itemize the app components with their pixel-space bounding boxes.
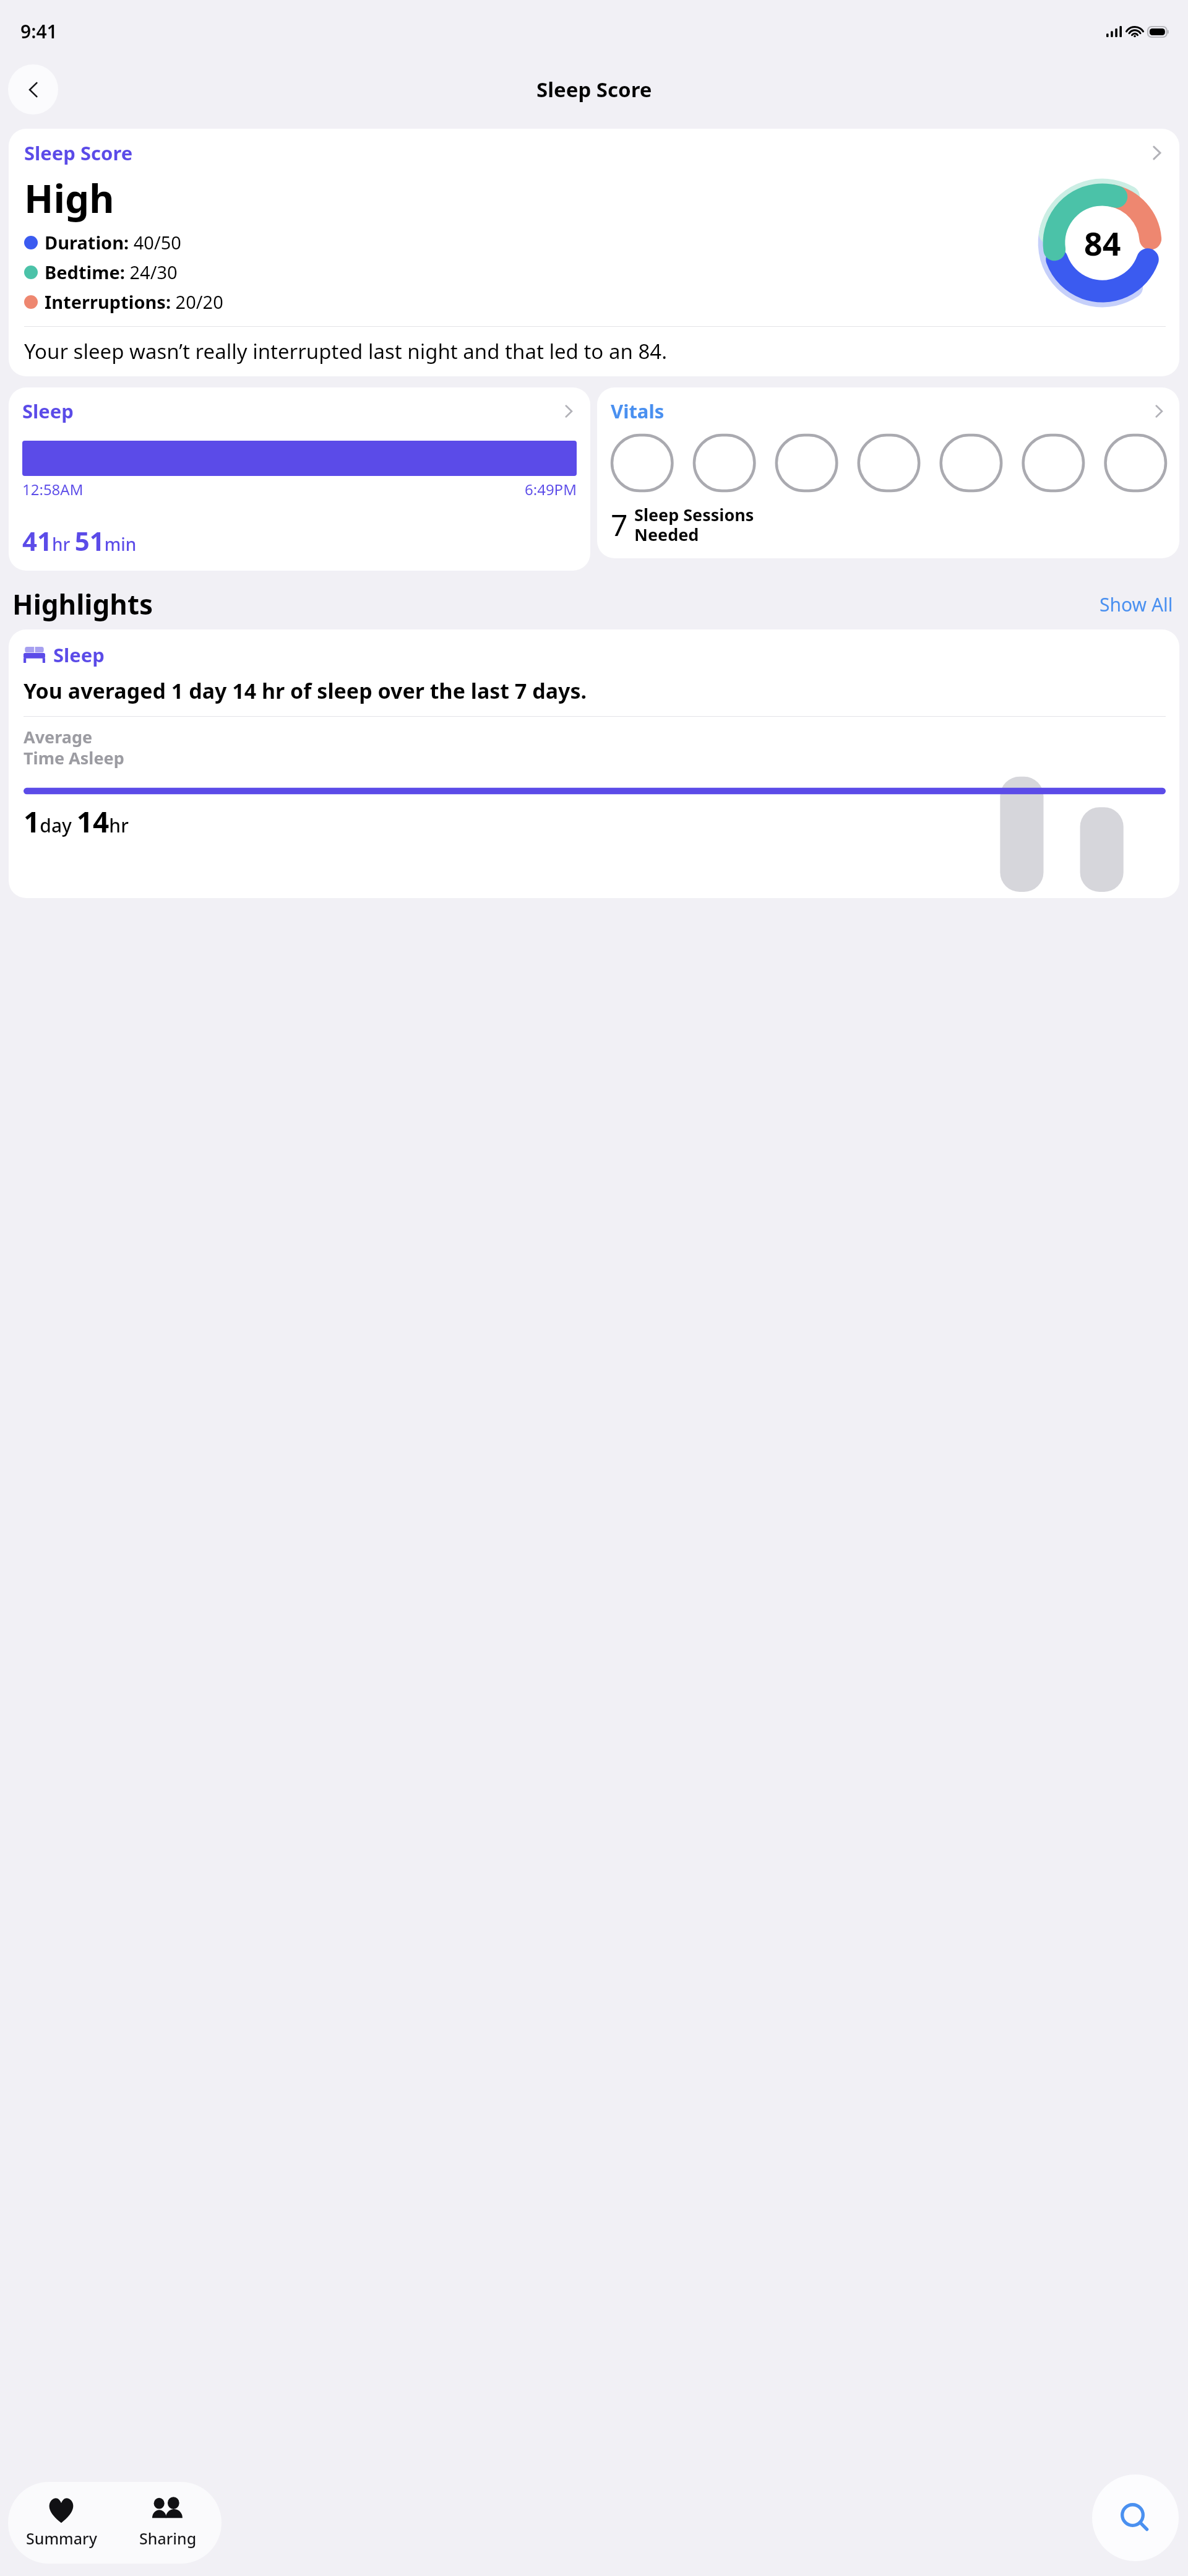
staticText: Highlights bbox=[12, 586, 153, 623]
staticText: Sleep bbox=[53, 642, 105, 668]
staticText: Duration: 40/50 bbox=[45, 230, 181, 254]
button[interactable]: Back bbox=[8, 64, 58, 115]
button[interactable]: Sleep bbox=[9, 387, 590, 571]
staticText: 41hr 51min bbox=[22, 523, 137, 558]
staticText: 6:49PM bbox=[525, 479, 577, 499]
staticText: 84 bbox=[1084, 221, 1121, 265]
staticText: Your sleep wasn’t really interrupted las… bbox=[24, 337, 667, 365]
staticText: Show All bbox=[1100, 592, 1173, 617]
staticText: Interruptions: 20/20 bbox=[45, 290, 223, 314]
button[interactable]: Show All bbox=[1097, 589, 1176, 620]
button[interactable]: Sleep Score bbox=[9, 129, 1179, 376]
button[interactable]: Search bbox=[1092, 2474, 1179, 2561]
staticText: Sleep Score bbox=[24, 140, 133, 166]
staticText: Vitals bbox=[611, 398, 665, 424]
button[interactable]: Sleep bbox=[9, 629, 1179, 898]
button[interactable]: Vitals bbox=[597, 387, 1179, 558]
staticText: Sleep Score bbox=[536, 76, 652, 103]
staticText: Summary bbox=[26, 2528, 97, 2549]
staticText: Average Time Asleep bbox=[24, 725, 124, 769]
button[interactable]: Sharing bbox=[114, 2482, 222, 2564]
staticText: 9:41 bbox=[20, 19, 58, 44]
staticText: 1day 14hr bbox=[24, 802, 129, 841]
staticText: Sleep bbox=[22, 398, 74, 424]
staticText: Sharing bbox=[139, 2528, 197, 2549]
staticText: Bedtime: 24/30 bbox=[45, 260, 178, 284]
staticText: 7 bbox=[611, 504, 628, 545]
staticText: You averaged 1 day 14 hr of sleep over t… bbox=[24, 676, 587, 705]
staticText: Sleep Sessions Needed bbox=[634, 503, 754, 546]
staticText: 12:58AM bbox=[22, 479, 84, 499]
button[interactable]: Summary bbox=[8, 2482, 114, 2564]
staticText: High bbox=[24, 172, 114, 224]
